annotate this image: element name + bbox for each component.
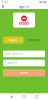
button[interactable]: REGISTER (23, 37, 44, 44)
staticText: Sign in (19, 5, 29, 8)
staticText: LOGIN (20, 71, 28, 75)
staticText: LOGIN (9, 38, 17, 42)
button[interactable]: Home (23, 95, 25, 98)
staticText: Password (5, 61, 17, 65)
button[interactable]: Recent apps (35, 95, 38, 98)
button[interactable]: Back (10, 95, 13, 98)
staticText: 9:41 (2, 0, 9, 4)
staticText: Email address (5, 52, 22, 56)
button[interactable]: Back (0, 4, 6, 9)
button[interactable]: LOGIN (3, 37, 23, 44)
staticText: BRAND (19, 22, 29, 25)
button[interactable]: LOGIN (3, 69, 45, 76)
staticText: REGISTER (28, 38, 40, 42)
